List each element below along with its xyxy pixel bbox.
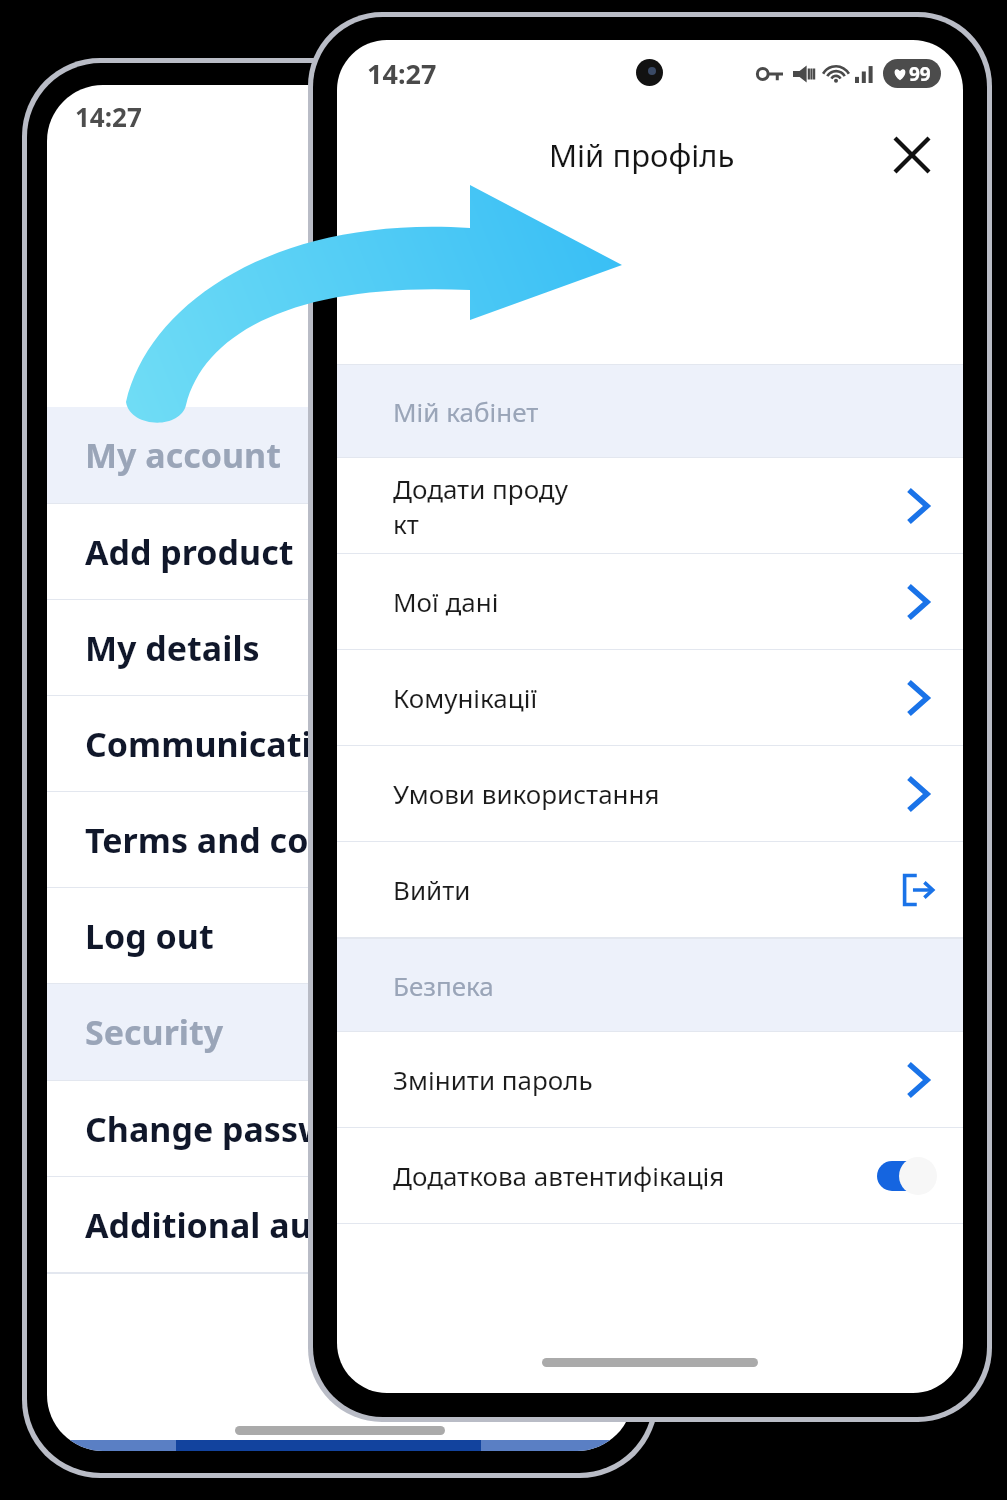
button[interactable]: Additional authentication <box>47 1177 633 1272</box>
staticText: 14:27 <box>367 55 437 92</box>
staticText: кт <box>393 506 419 541</box>
button[interactable]: Умови використання <box>337 746 963 841</box>
staticText: Додаткова автентифікація <box>393 1158 725 1193</box>
button[interactable]: Terms and conditions <box>47 792 633 887</box>
button[interactable]: Комунікації <box>337 650 963 745</box>
staticText: Log out <box>85 913 214 959</box>
staticText: Умови використання <box>393 776 660 811</box>
staticText: Add product <box>85 529 294 575</box>
staticText: Communications <box>85 721 372 767</box>
staticText: Додати проду <box>393 471 568 506</box>
staticText: Безпека <box>393 968 494 1003</box>
staticText: My account <box>85 432 281 478</box>
button[interactable]: My details <box>47 600 633 695</box>
button[interactable]: Communications <box>47 696 633 791</box>
staticText: Мій кабінет <box>393 394 539 429</box>
staticText: Additional authentication <box>85 1202 523 1248</box>
button[interactable]: Додати проду <box>337 458 963 553</box>
button[interactable]: Log out <box>47 888 633 983</box>
staticText: Security <box>85 1009 224 1055</box>
staticText: Change password <box>85 1106 385 1152</box>
button[interactable]: Close <box>883 126 941 184</box>
staticText: Вийти <box>393 872 471 907</box>
button[interactable]: Мої дані <box>337 554 963 649</box>
button[interactable]: Змінити пароль <box>337 1032 963 1127</box>
staticText: My details <box>85 625 260 671</box>
staticText: 14:27 <box>75 99 142 134</box>
button[interactable]: Security <box>47 984 633 1080</box>
staticText: 99 <box>909 61 931 87</box>
button[interactable]: Change password <box>47 1081 633 1176</box>
staticText: Змінити пароль <box>393 1062 593 1097</box>
staticText: Комунікації <box>393 680 538 715</box>
button[interactable]: Вийти <box>337 842 963 937</box>
button[interactable]: Додаткова автентифікація <box>337 1128 963 1223</box>
staticText: Мій профіль <box>549 134 735 176</box>
staticText: Terms and conditions <box>85 817 448 863</box>
button[interactable]: My account <box>47 407 633 503</box>
button[interactable]: Add product <box>47 504 633 599</box>
staticText: Мої дані <box>393 584 499 619</box>
